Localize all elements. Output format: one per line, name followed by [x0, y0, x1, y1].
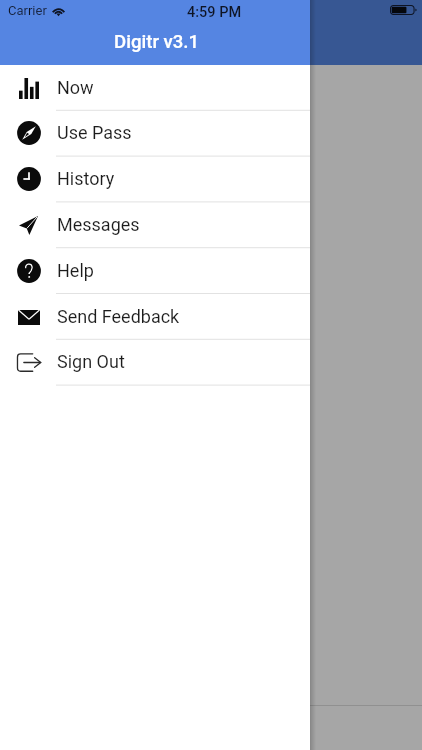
staticText: Send Feedback: [57, 306, 180, 327]
staticText: Now: [57, 77, 94, 98]
button[interactable]: Sign Out: [0, 339, 310, 385]
button[interactable]: History: [0, 156, 310, 202]
staticText: Carrier: [8, 3, 47, 18]
button[interactable]: Use Pass: [0, 110, 310, 156]
staticText: Help: [57, 260, 94, 281]
staticText: Digitr v3.1: [114, 31, 200, 53]
button[interactable]: Now: [0, 65, 310, 111]
staticText: Messages: [57, 214, 140, 235]
other: Battery: [390, 5, 417, 15]
button[interactable]: Help: [0, 248, 310, 294]
staticText: Use Pass: [57, 122, 132, 143]
staticText: History: [57, 168, 115, 189]
staticText: 4:59 PM: [187, 4, 242, 21]
staticText: Sign Out: [57, 351, 125, 372]
button[interactable]: Messages: [0, 202, 310, 248]
button[interactable]: Send Feedback: [0, 294, 310, 340]
other: Wi-Fi: [51, 5, 66, 16]
